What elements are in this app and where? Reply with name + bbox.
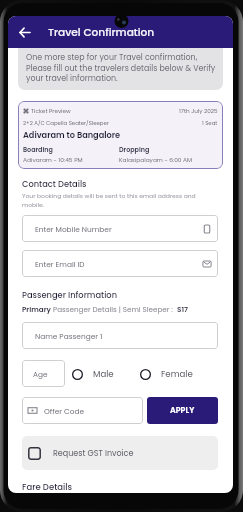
- staticText: 17th July 2025: [179, 107, 218, 115]
- staticText: APPLY: [170, 405, 195, 416]
- staticText: Dropping: [119, 145, 150, 154]
- staticText: Enter Email ID: [35, 259, 85, 269]
- staticText: Name Passenger 1: [35, 331, 103, 341]
- staticText: S17: [177, 304, 188, 314]
- button[interactable]: Enter Mobile Number: [22, 215, 218, 242]
- other: Email: [202, 259, 212, 269]
- button[interactable]: Ticket Preview: [18, 101, 223, 169]
- staticText: One more step for your Travel confirmati…: [26, 52, 216, 83]
- button[interactable]: Request GST Invoice: [22, 436, 218, 470]
- staticText: Fare Details: [22, 481, 73, 493]
- staticText: Adivaram to Bangalore: [23, 129, 121, 140]
- button[interactable]: Male: [72, 364, 114, 384]
- staticText: 2+2 A/C Capella Seater/Sleeper: [23, 119, 109, 127]
- staticText: Kalasipalayam - 6:00 AM: [119, 156, 193, 164]
- staticText: Passenger Details | Semi Sleeper :: [53, 304, 177, 314]
- button[interactable]: Name Passenger 1: [22, 322, 218, 349]
- staticText: Male: [93, 368, 114, 380]
- button[interactable]: Age: [22, 360, 65, 387]
- staticText: Female: [161, 368, 193, 380]
- button[interactable]: Female: [140, 364, 193, 384]
- staticText: Ticket Preview: [31, 107, 71, 115]
- staticText: Age: [33, 369, 48, 379]
- staticText: Contact Details: [22, 178, 87, 190]
- button[interactable]: Enter Email ID: [22, 250, 218, 277]
- staticText: Adivaram - 10:45 PM: [23, 156, 83, 164]
- button[interactable]: Offer Code: [22, 397, 143, 424]
- staticText: Primary: [22, 304, 53, 314]
- staticText: 1 Seat: [202, 119, 218, 127]
- button[interactable]: APPLY: [147, 397, 218, 424]
- staticText: Boarding: [23, 145, 53, 154]
- staticText: Your booking details will be sent to thi…: [22, 192, 196, 210]
- staticText: Offer Code: [44, 406, 84, 416]
- staticText: Passenger Information: [22, 289, 118, 301]
- other: Mobile number: [202, 224, 212, 234]
- staticText: Travel Confirmation: [48, 25, 155, 40]
- staticText: Request GST Invoice: [53, 448, 134, 459]
- button[interactable]: Back: [13, 21, 35, 43]
- staticText: Enter Mobile Number: [35, 224, 112, 234]
